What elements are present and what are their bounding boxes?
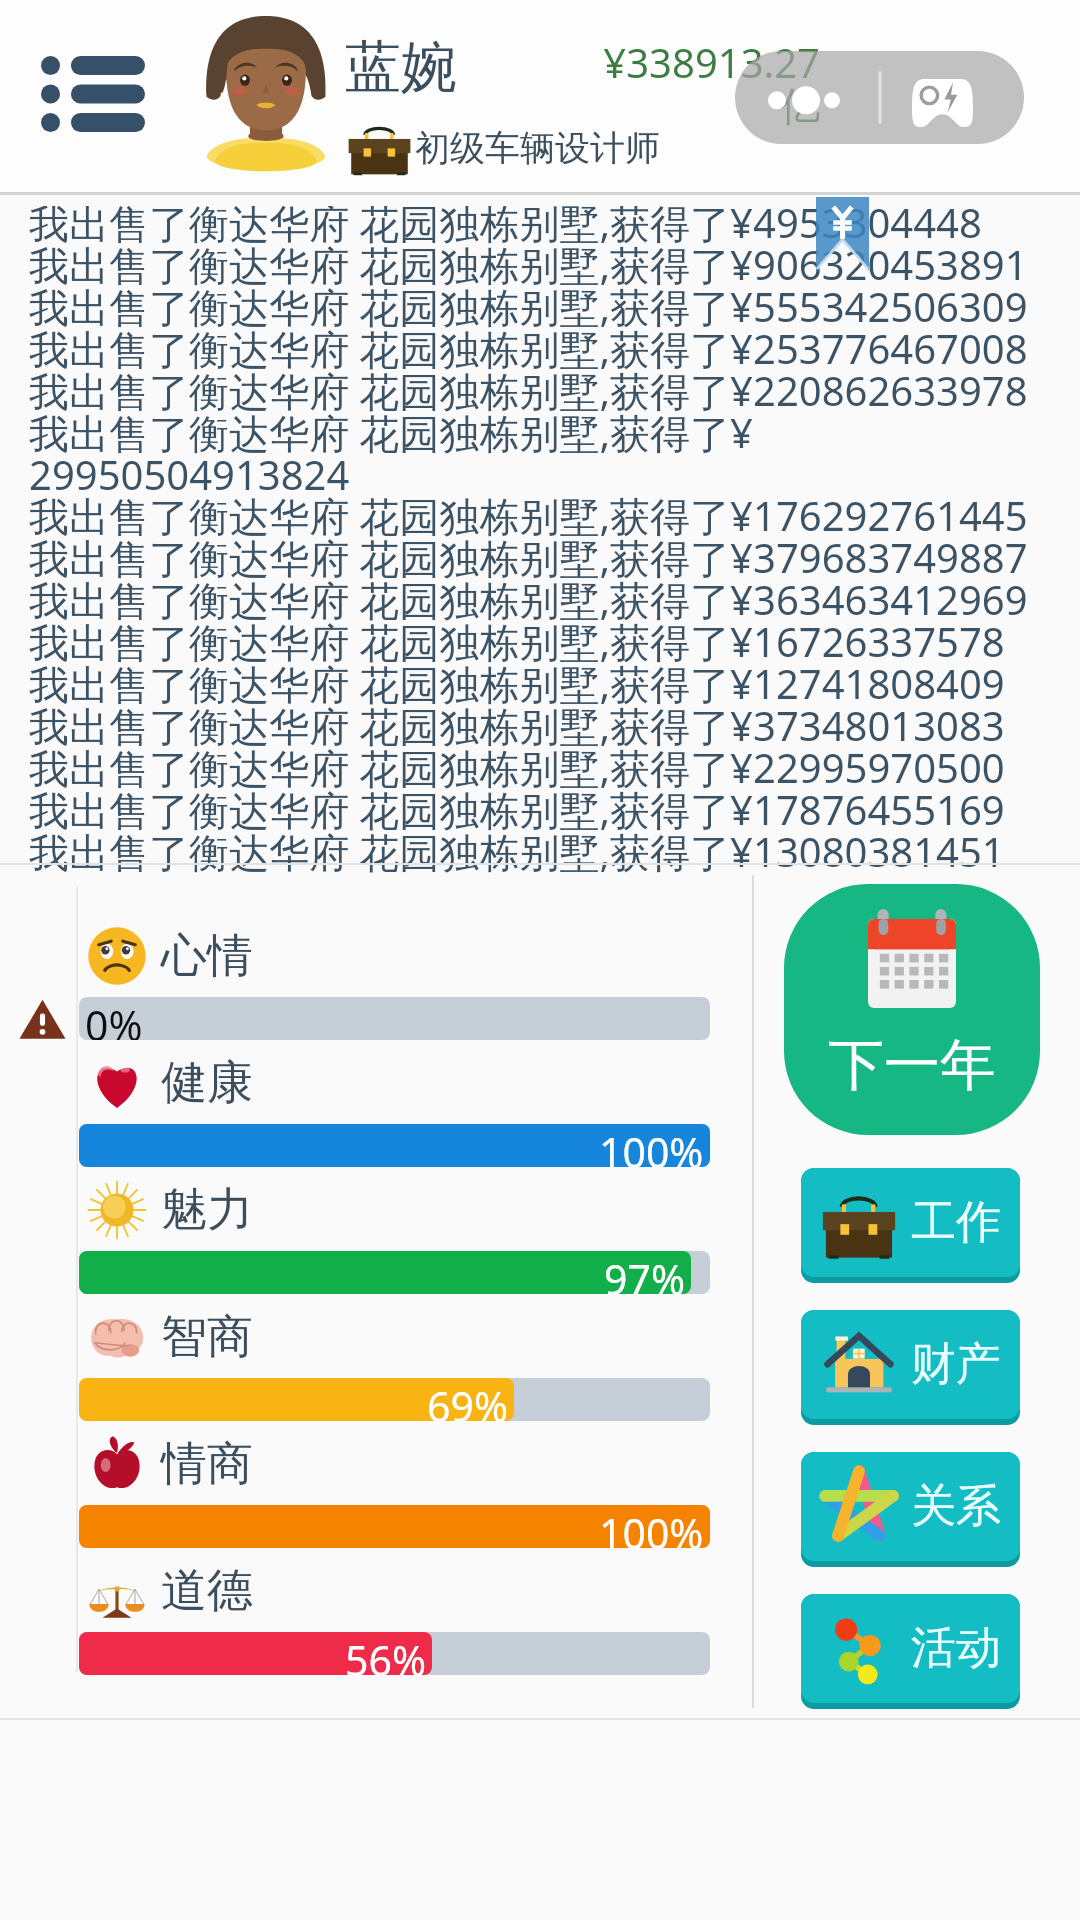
staticText: 财产 xyxy=(911,1336,1001,1393)
staticText: 97% xyxy=(604,1251,685,1294)
staticText: 初级车辆设计师 xyxy=(415,126,660,170)
staticText: 智商 xyxy=(161,1308,253,1366)
staticText: 100% xyxy=(599,1505,704,1548)
staticText: 情商 xyxy=(161,1435,253,1493)
staticText: 活动 xyxy=(911,1620,1001,1677)
button[interactable]: 初级车辆设计师 xyxy=(415,126,660,170)
button[interactable]: 下一年 xyxy=(784,884,1040,1135)
staticText: 蓝婉 xyxy=(345,32,457,103)
staticText: ¥338913.27亿 xyxy=(601,43,820,131)
other: Game assistant xyxy=(912,78,973,127)
button[interactable]: 工作 xyxy=(801,1168,1020,1283)
staticText: 下一年 xyxy=(828,1030,996,1101)
button[interactable]: Warning xyxy=(19,999,66,1040)
staticText: 100% xyxy=(599,1124,704,1167)
button[interactable]: 关系 xyxy=(801,1452,1020,1567)
button[interactable]: ¥338913.27亿 xyxy=(601,43,820,131)
staticText: 关系 xyxy=(911,1478,1001,1535)
button[interactable]: 活动 xyxy=(801,1594,1020,1709)
staticText: 69% xyxy=(427,1378,508,1421)
staticText: 我出售了衡达华府 花园独栋别墅,获得了¥​4953304448 我出售了衡达华府… xyxy=(29,206,1072,874)
button[interactable]: 财产 xyxy=(801,1310,1020,1425)
staticText: 心情 xyxy=(161,927,253,985)
staticText: 道德 xyxy=(161,1562,253,1620)
staticText: 56% xyxy=(345,1632,426,1675)
button[interactable]: 蓝婉 xyxy=(345,32,457,103)
button[interactable]: Game toolbar xyxy=(735,51,1024,144)
button[interactable]: 我出售了衡达华府 花园独栋别墅,获得了¥​4953304448 我出售了衡达华府… xyxy=(0,195,1080,863)
staticText: 工作 xyxy=(911,1194,1001,1251)
button[interactable]: Money bookmark xyxy=(816,197,869,271)
staticText: 魅力 xyxy=(161,1181,253,1239)
staticText: 健康 xyxy=(161,1054,253,1112)
staticText: 0% xyxy=(85,997,143,1040)
button[interactable]: Menu xyxy=(20,36,165,151)
button[interactable]: Avatar xyxy=(196,10,336,182)
